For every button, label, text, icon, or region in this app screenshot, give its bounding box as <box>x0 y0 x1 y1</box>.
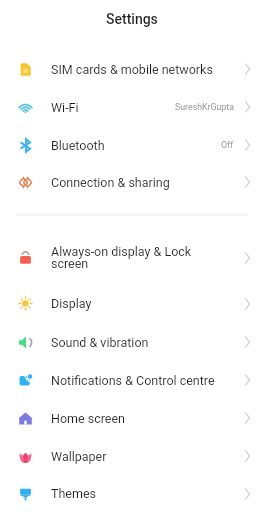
button[interactable]: Notifications & Control centre <box>0 361 264 399</box>
staticText: Off <box>221 140 234 150</box>
button[interactable]: Wi-Fi <box>0 88 264 126</box>
button[interactable]: SIM cards & mobile networks <box>0 50 264 88</box>
staticText: Notifications & Control centre <box>51 373 241 388</box>
staticText: Home screen <box>51 411 241 426</box>
button[interactable]: Always-on display & Lock screen <box>0 231 264 284</box>
staticText: Themes <box>51 486 241 501</box>
button[interactable]: Sound & vibration <box>0 323 264 361</box>
button[interactable]: Connection & sharing <box>0 164 264 200</box>
staticText: Always-on display & Lock screen <box>51 244 241 272</box>
button[interactable]: Themes <box>0 475 264 512</box>
staticText: Bluetooth <box>51 138 221 153</box>
button[interactable]: Home screen <box>0 399 264 437</box>
button[interactable]: Display <box>0 284 264 323</box>
staticText: Wi-Fi <box>51 100 175 115</box>
button[interactable]: Bluetooth <box>0 126 264 164</box>
staticText: Sound & vibration <box>51 335 241 350</box>
staticText: SIM cards & mobile networks <box>51 62 241 77</box>
staticText: Settings <box>106 11 158 27</box>
button[interactable]: Wallpaper <box>0 437 264 475</box>
staticText: Display <box>51 296 241 311</box>
staticText: Wallpaper <box>51 449 241 464</box>
staticText: Connection & sharing <box>51 175 241 190</box>
staticText: SureshKrGupta <box>175 102 234 112</box>
